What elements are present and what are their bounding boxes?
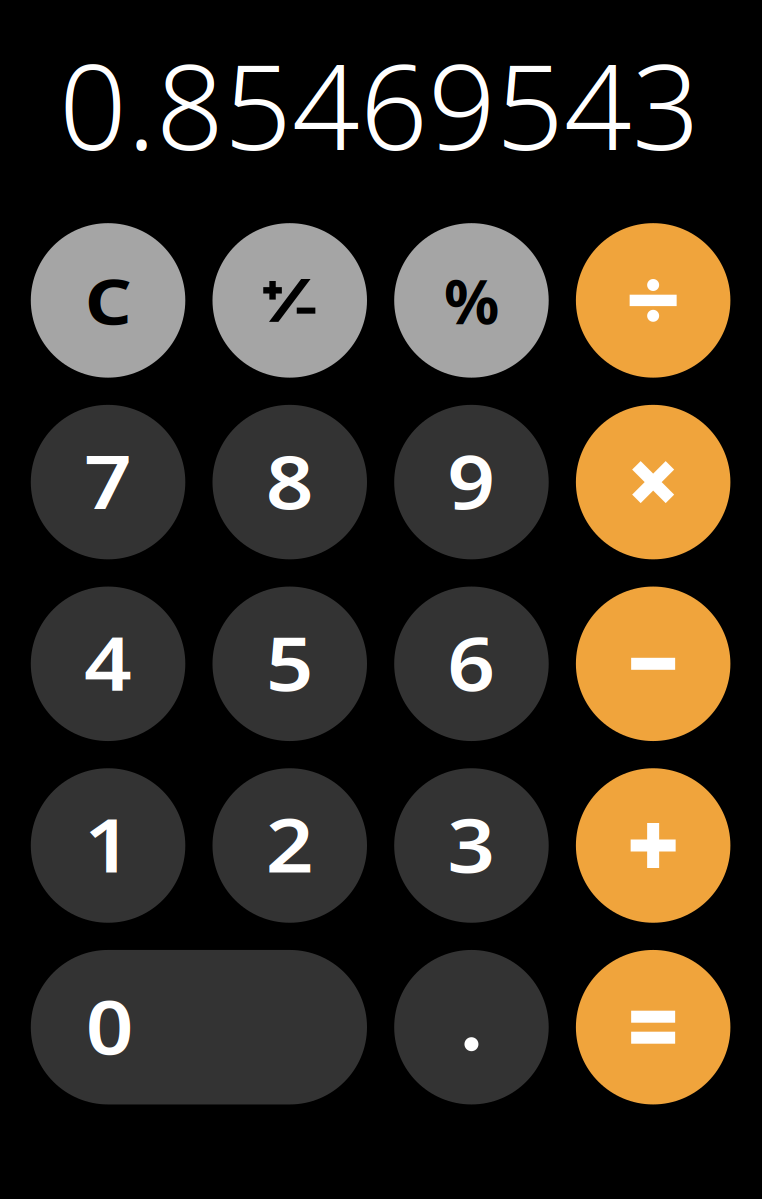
staticText: % <box>444 260 499 341</box>
staticText: 5 <box>268 612 311 711</box>
staticText: 7 <box>86 430 129 530</box>
button[interactable]: Divide <box>576 223 730 378</box>
button[interactable]: 7 <box>31 405 185 559</box>
button[interactable]: 8 <box>212 405 367 559</box>
staticText: 0 <box>88 976 131 1075</box>
button[interactable]: Plus minus <box>212 223 367 378</box>
staticText: 0.85469543 <box>59 25 700 183</box>
button[interactable]: Multiply <box>576 405 730 559</box>
button[interactable]: 9 <box>394 405 549 559</box>
staticText: 6 <box>450 612 493 711</box>
button[interactable]: C <box>31 223 185 378</box>
staticText: C <box>88 259 128 342</box>
button[interactable]: Decimal point <box>394 950 549 1104</box>
button[interactable]: 0 <box>31 950 367 1104</box>
staticText: 8 <box>268 430 311 530</box>
staticText: 2 <box>268 794 311 893</box>
staticText: 1 <box>86 794 129 893</box>
button[interactable]: 5 <box>212 586 367 741</box>
button[interactable]: 1 <box>31 768 185 923</box>
staticText: 9 <box>450 430 493 530</box>
button[interactable]: % <box>394 223 549 378</box>
button[interactable]: Subtract <box>576 586 730 741</box>
button[interactable]: 4 <box>31 586 185 741</box>
button[interactable]: 6 <box>394 586 549 741</box>
button[interactable]: Add <box>576 768 730 923</box>
staticText: 3 <box>450 794 493 893</box>
button[interactable]: Equals <box>576 950 730 1104</box>
button[interactable]: 2 <box>212 768 367 923</box>
button[interactable]: 3 <box>394 768 549 923</box>
staticText: 4 <box>86 612 129 711</box>
